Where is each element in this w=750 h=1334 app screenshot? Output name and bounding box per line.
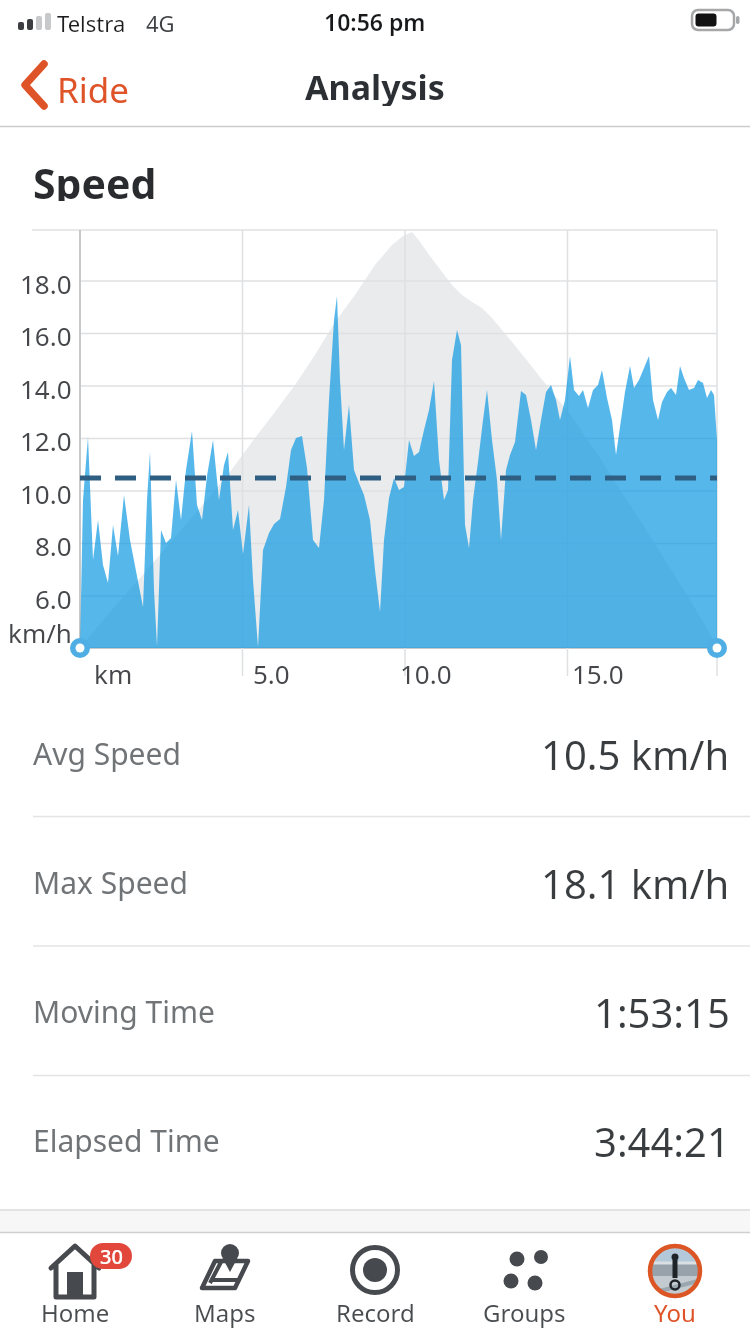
staticText: 14.0 xyxy=(20,371,72,401)
staticText: 10.5 km/h xyxy=(541,727,730,779)
staticText: 18.1 km/h xyxy=(541,856,730,908)
staticText: km/h xyxy=(8,615,72,645)
staticText: 6.0 xyxy=(35,581,72,611)
staticText: Telstra xyxy=(57,8,126,34)
staticText: 15.0 xyxy=(572,656,624,684)
staticText: Max Speed xyxy=(33,862,188,903)
staticText: 8.0 xyxy=(35,528,72,558)
staticText: Analysis xyxy=(305,64,445,106)
staticText: 30 xyxy=(100,1243,123,1269)
staticText: Groups xyxy=(483,1296,566,1328)
staticText: 10:56 pm xyxy=(324,6,426,36)
button[interactable] xyxy=(5,1236,145,1332)
staticText: 3:44:21 xyxy=(594,1114,730,1166)
staticText: Ride xyxy=(57,66,130,104)
button[interactable] xyxy=(10,55,160,115)
staticText: Avg Speed xyxy=(33,733,181,774)
staticText: 4G xyxy=(146,8,175,34)
staticText: 1:53:15 xyxy=(594,985,730,1037)
staticText: Speed xyxy=(33,155,157,201)
staticText: Elapsed Time xyxy=(33,1120,220,1161)
staticText: 12.0 xyxy=(20,423,72,453)
staticText: Home xyxy=(41,1296,110,1328)
staticText: You xyxy=(654,1296,696,1328)
staticText: 5.0 xyxy=(253,656,290,684)
button[interactable] xyxy=(605,1236,745,1332)
button[interactable] xyxy=(454,1236,594,1332)
staticText: Record xyxy=(336,1296,415,1328)
button[interactable] xyxy=(305,1236,445,1332)
staticText: km xyxy=(94,656,133,684)
staticText: Maps xyxy=(194,1296,256,1328)
staticText: 16.0 xyxy=(20,318,72,348)
button[interactable] xyxy=(155,1236,295,1332)
staticText: 18.0 xyxy=(20,266,72,296)
staticText: 10.0 xyxy=(400,656,452,684)
staticText: Moving Time xyxy=(33,991,215,1032)
staticText: 10.0 xyxy=(20,476,72,506)
